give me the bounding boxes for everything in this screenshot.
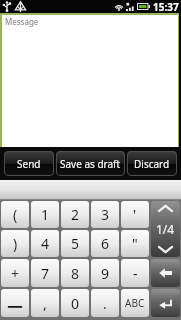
- button[interactable]: +: [1, 259, 29, 287]
- staticText: 5: [71, 234, 80, 253]
- staticText: (: [13, 205, 18, 224]
- button[interactable]: Backspace: [151, 259, 180, 287]
- staticText: Message: [5, 16, 39, 27]
- button[interactable]: 1: [31, 201, 59, 228]
- staticText: Send: [17, 157, 41, 171]
- button[interactable]: 0: [61, 289, 89, 317]
- button[interactable]: ': [121, 201, 149, 228]
- staticText: .: [103, 294, 107, 313]
- button[interactable]: 9: [91, 259, 119, 287]
- button[interactable]: 8: [61, 259, 89, 287]
- button[interactable]: Page 1 of 4: [151, 201, 180, 257]
- staticText: -: [133, 264, 138, 283]
- button[interactable]: Save as draft: [56, 151, 125, 176]
- staticText: ): [13, 234, 18, 253]
- button[interactable]: 4: [31, 230, 59, 257]
- staticText: ': [133, 205, 137, 224]
- button[interactable]: 3: [91, 201, 119, 228]
- button[interactable]: ,: [31, 289, 59, 317]
- staticText: Save as draft: [60, 157, 121, 171]
- staticText: 0: [71, 294, 80, 313]
- staticText: 15:37: [153, 0, 179, 13]
- staticText: 1/4: [156, 221, 175, 237]
- button[interactable]: ": [121, 230, 149, 257]
- button[interactable]: Send: [4, 151, 54, 176]
- button[interactable]: ABC: [121, 289, 149, 317]
- staticText: +: [11, 264, 20, 283]
- staticText: 3: [101, 205, 110, 224]
- staticText: 4: [41, 234, 50, 253]
- button[interactable]: 5: [61, 230, 89, 257]
- button[interactable]: Discard: [127, 151, 177, 176]
- button[interactable]: 6: [91, 230, 119, 257]
- staticText: 6: [101, 234, 110, 253]
- staticText: Discard: [134, 157, 170, 171]
- staticText: 7: [41, 264, 50, 283]
- staticText: 1: [41, 205, 50, 224]
- staticText: 9: [101, 264, 110, 283]
- staticText: ": [132, 234, 138, 253]
- button[interactable]: 2: [61, 201, 89, 228]
- button[interactable]: -: [121, 259, 149, 287]
- button[interactable]: 7: [31, 259, 59, 287]
- staticText: 8: [71, 264, 80, 283]
- button[interactable]: [1, 289, 29, 317]
- staticText: 2: [71, 205, 80, 224]
- staticText: ,: [43, 294, 47, 313]
- button[interactable]: (: [1, 201, 29, 228]
- button[interactable]: ): [1, 230, 29, 257]
- button[interactable]: .: [91, 289, 119, 317]
- staticText: ABC: [125, 296, 145, 310]
- button[interactable]: Enter: [151, 289, 180, 317]
